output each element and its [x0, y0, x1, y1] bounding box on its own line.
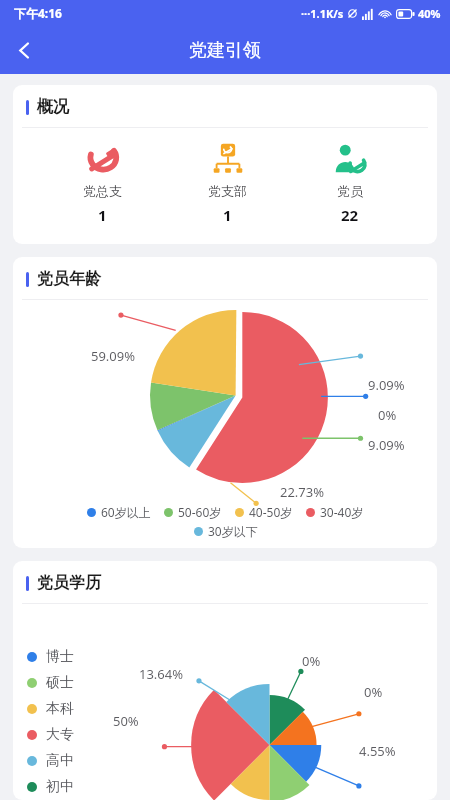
button[interactable]: 党总支 — [67, 141, 138, 227]
staticText: 60岁以上 — [101, 504, 151, 520]
staticText: 0% — [302, 652, 321, 670]
staticText: 初中 — [46, 778, 74, 796]
staticText: 13.64% — [139, 665, 184, 683]
staticText: 0% — [378, 406, 397, 424]
staticText: 下午4:16 — [14, 5, 62, 21]
button[interactable]: 博士 — [27, 644, 74, 670]
staticText: 50-60岁 — [178, 504, 222, 520]
staticText: 党总支 — [83, 183, 122, 199]
staticText: 高中 — [46, 752, 74, 770]
staticText: 党支部 — [208, 183, 247, 199]
staticText: 党员 — [337, 183, 363, 199]
button[interactable]: 大专 — [27, 722, 74, 748]
button[interactable]: 30-40岁 — [306, 504, 364, 520]
staticText: 9.09% — [368, 436, 405, 454]
staticText: 0% — [364, 683, 383, 701]
button[interactable]: Back — [0, 26, 48, 74]
staticText: 40% — [418, 6, 441, 21]
button[interactable]: 30岁以下 — [194, 523, 258, 539]
staticText: 1 — [98, 205, 107, 225]
staticText: 50% — [113, 712, 139, 730]
staticText: 59.09% — [91, 347, 136, 365]
button[interactable]: 党员 — [317, 141, 383, 227]
button[interactable]: 40-50岁 — [235, 504, 293, 520]
staticText: 硕士 — [46, 674, 74, 692]
button[interactable]: 党支部 — [192, 141, 263, 227]
staticText: 22 — [341, 205, 359, 225]
staticText: 本科 — [46, 700, 74, 718]
staticText: 40-50岁 — [249, 504, 293, 520]
staticText: 30岁以下 — [208, 523, 258, 539]
staticText: 22.73% — [280, 483, 325, 501]
staticText: 30-40岁 — [320, 504, 364, 520]
button[interactable]: 60岁以上 — [87, 504, 151, 520]
staticText: 党建引领 — [189, 39, 261, 62]
staticText: 4.55% — [359, 742, 396, 760]
staticText: ···1.1K/s — [301, 6, 344, 21]
staticText: 9.09% — [368, 376, 405, 394]
staticText: 大专 — [46, 726, 74, 744]
staticText: 概况 — [37, 97, 69, 117]
staticText: 党员学历 — [37, 573, 101, 593]
button[interactable]: 本科 — [27, 696, 74, 722]
staticText: 博士 — [46, 648, 74, 666]
staticText: 党员年龄 — [37, 269, 101, 289]
button[interactable]: 初中 — [27, 774, 74, 800]
staticText: 1 — [223, 205, 232, 225]
button[interactable]: 硕士 — [27, 670, 74, 696]
button[interactable]: 高中 — [27, 748, 74, 774]
button[interactable]: 50-60岁 — [164, 504, 222, 520]
